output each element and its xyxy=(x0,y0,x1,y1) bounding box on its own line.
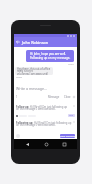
button[interactable]: Hey there, this out-of-office reply is t… xyxy=(15,67,53,75)
button[interactable]: Home xyxy=(41,139,51,149)
button[interactable]: Back xyxy=(14,37,22,47)
staticText: 1 xyxy=(16,95,18,99)
staticText: Hi John, hope you are well. Following up… xyxy=(30,52,71,60)
staticText: 10:21 xyxy=(68,63,74,66)
button[interactable]: Hi John, hope you are well. Following up… xyxy=(26,50,74,62)
staticText: Save xyxy=(69,114,74,117)
staticText: Follow up: Hi {{first}} I'm just followi… xyxy=(16,105,72,111)
staticText: 10:24 xyxy=(16,76,22,79)
staticText: Message xyxy=(48,95,60,99)
button[interactable]: Save xyxy=(68,114,75,117)
button[interactable]: Add template xyxy=(16,134,20,138)
staticText: Write a message... xyxy=(16,86,47,91)
staticText: Following up: Hi {{first}} I'm just foll… xyxy=(16,121,72,127)
button[interactable]: Back xyxy=(22,139,32,149)
staticText: Hey there, this out-of-office reply is t… xyxy=(17,67,51,75)
staticText: Send message xyxy=(60,135,75,138)
staticText: John Robinson xyxy=(22,40,49,45)
button[interactable]: Recent apps xyxy=(59,139,69,149)
button[interactable]: Send message xyxy=(60,134,75,138)
staticText: Close xyxy=(64,95,71,99)
